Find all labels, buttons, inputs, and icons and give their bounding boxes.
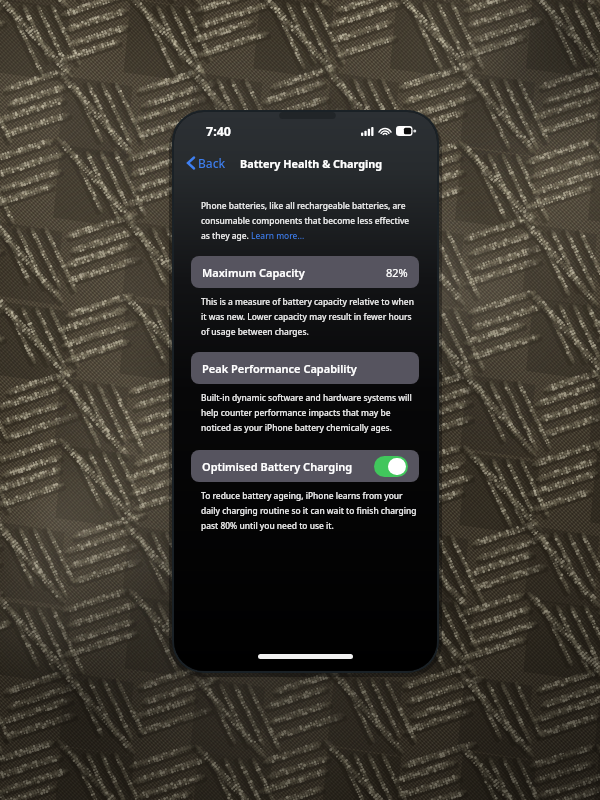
- staticText: Maximum Capacity: [202, 265, 305, 280]
- button[interactable]: Maximum Capacity: [191, 256, 419, 288]
- button[interactable]: Optimised Battery Charging toggle: [374, 456, 408, 477]
- staticText: Optimised Battery Charging: [202, 459, 353, 474]
- staticText: 82%: [386, 265, 408, 280]
- staticText: This is a measure of battery capacity re…: [201, 296, 419, 337]
- staticText: To reduce battery ageing, iPhone learns …: [201, 490, 419, 531]
- staticText: Built-in dynamic software and hardware s…: [201, 392, 419, 433]
- button[interactable]: Peak Performance Capability: [191, 352, 419, 384]
- staticText: Battery Health & Charging: [240, 156, 383, 171]
- staticText: Back: [198, 155, 226, 171]
- staticText: Peak Performance Capability: [202, 361, 357, 376]
- button[interactable]: Optimised Battery Charging: [191, 450, 419, 482]
- button[interactable]: Back: [185, 151, 228, 175]
- staticText: 7:40: [206, 123, 231, 140]
- button[interactable]: Phone batteries, like all rechargeable b…: [191, 200, 419, 241]
